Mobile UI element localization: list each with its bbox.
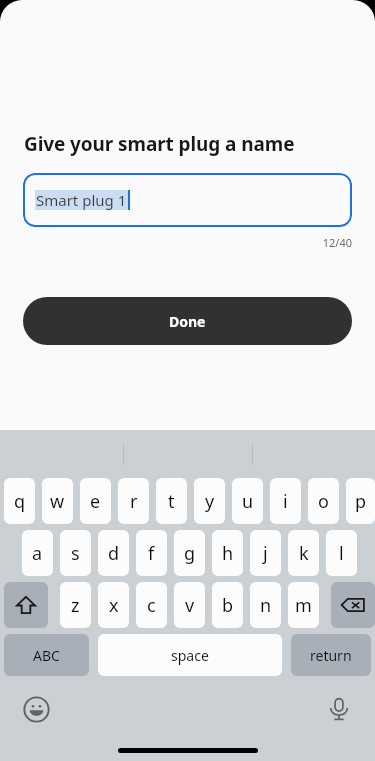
staticText: u	[242, 489, 254, 514]
button[interactable]: Smart plug 1	[23, 173, 352, 227]
staticText: return	[310, 646, 352, 665]
button[interactable]: k	[288, 530, 319, 576]
staticText: m	[295, 593, 312, 618]
staticText: a	[32, 541, 43, 566]
staticText: j	[263, 541, 268, 566]
button[interactable]: return	[291, 634, 371, 676]
button[interactable]: Done	[23, 297, 352, 345]
staticText: i	[283, 489, 288, 514]
staticText: h	[222, 541, 234, 566]
button[interactable]: ABC	[4, 634, 89, 676]
button[interactable]: i	[270, 478, 301, 524]
staticText: g	[184, 541, 196, 566]
staticText: v	[185, 593, 195, 618]
button[interactable]: j	[250, 530, 281, 576]
button[interactable]: Backspace	[331, 582, 375, 628]
staticText: n	[260, 593, 272, 618]
button[interactable]: r	[118, 478, 149, 524]
staticText: o	[318, 489, 329, 514]
button[interactable]: p	[346, 478, 375, 524]
button[interactable]: Shift	[4, 582, 48, 628]
staticText: Smart plug 1	[36, 190, 127, 210]
staticText: b	[222, 593, 234, 618]
button[interactable]: a	[22, 530, 53, 576]
button[interactable]: b	[212, 582, 243, 628]
staticText: 12/40	[0, 235, 352, 250]
button[interactable]: o	[308, 478, 339, 524]
button[interactable]: space	[98, 634, 282, 676]
staticText: ABC	[33, 646, 60, 665]
staticText: y	[205, 489, 215, 514]
button[interactable]: d	[98, 530, 129, 576]
staticText: s	[71, 541, 80, 566]
button[interactable]: m	[288, 582, 319, 628]
staticText: k	[299, 541, 309, 566]
staticText: p	[355, 489, 367, 514]
button[interactable]: w	[42, 478, 73, 524]
button[interactable]: s	[60, 530, 91, 576]
staticText: r	[130, 489, 138, 514]
button[interactable]: t	[156, 478, 187, 524]
button[interactable]: x	[98, 582, 129, 628]
staticText: space	[171, 646, 209, 665]
staticText: z	[71, 593, 80, 618]
staticText: t	[168, 489, 175, 514]
button[interactable]: e	[80, 478, 111, 524]
staticText: w	[50, 489, 65, 514]
button[interactable]: g	[174, 530, 205, 576]
staticText: Give your smart plug a name	[24, 131, 295, 157]
button[interactable]: Voice input	[319, 689, 359, 729]
staticText: e	[90, 489, 101, 514]
button[interactable]: v	[174, 582, 205, 628]
button[interactable]: f	[136, 530, 167, 576]
staticText: c	[147, 593, 156, 618]
button[interactable]: h	[212, 530, 243, 576]
button[interactable]: q	[4, 478, 35, 524]
staticText: f	[148, 541, 155, 566]
button[interactable]: u	[232, 478, 263, 524]
button[interactable]: n	[250, 582, 281, 628]
button[interactable]: Emoji	[16, 689, 56, 729]
button[interactable]: z	[60, 582, 91, 628]
staticText: d	[108, 541, 120, 566]
button[interactable]: c	[136, 582, 167, 628]
button[interactable]: l	[326, 530, 357, 576]
button[interactable]: y	[194, 478, 225, 524]
staticText: l	[339, 541, 344, 566]
staticText: x	[109, 593, 119, 618]
staticText: q	[14, 489, 26, 514]
staticText: Done	[169, 312, 206, 331]
